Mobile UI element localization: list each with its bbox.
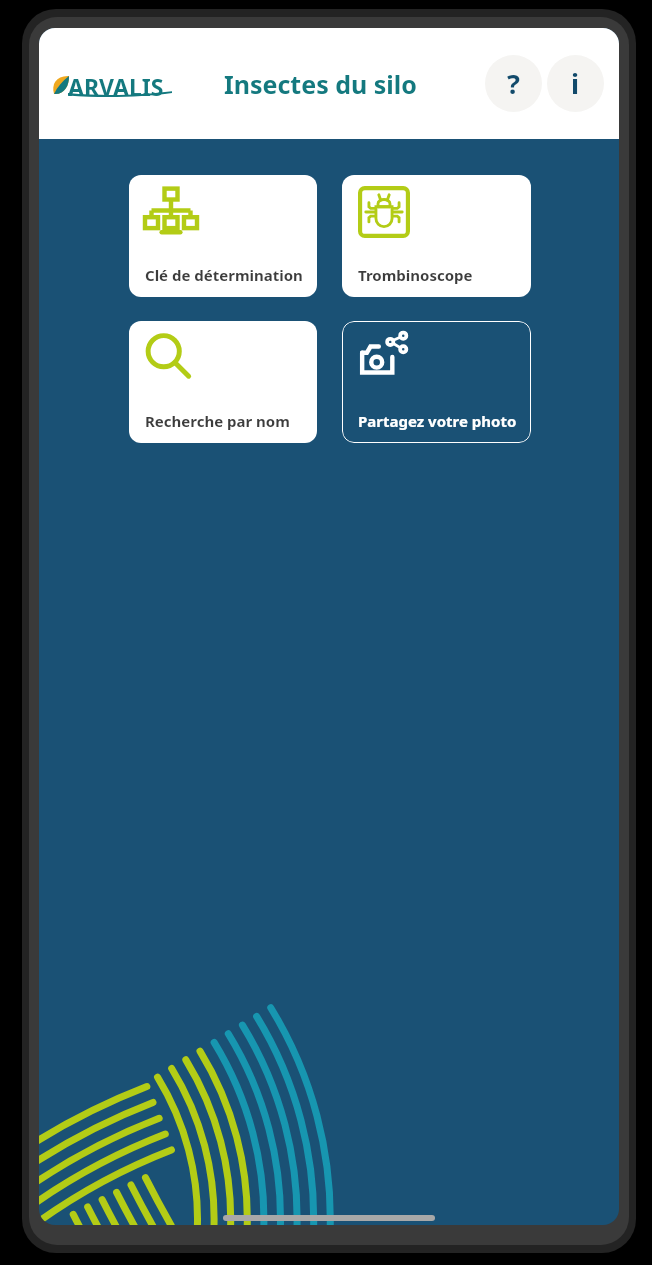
staticText: Clé de détermination [145, 265, 303, 285]
button[interactable]: Partagez votre photo [342, 321, 531, 443]
button[interactable]: Recherche par nom [129, 321, 317, 443]
staticText: Insectes du silo [224, 67, 417, 101]
staticText: Recherche par nom [145, 411, 290, 431]
staticText: i [571, 65, 580, 102]
staticText: ARVALIS [68, 71, 164, 101]
staticText: Trombinoscope [358, 265, 473, 285]
staticText: Partagez votre photo [358, 411, 517, 431]
button[interactable]: Clé de détermination [129, 175, 317, 297]
staticText: ? [507, 65, 520, 102]
button[interactable]: Informations [547, 55, 604, 112]
button[interactable]: Trombinoscope [342, 175, 531, 297]
button[interactable]: Aide [485, 55, 542, 112]
